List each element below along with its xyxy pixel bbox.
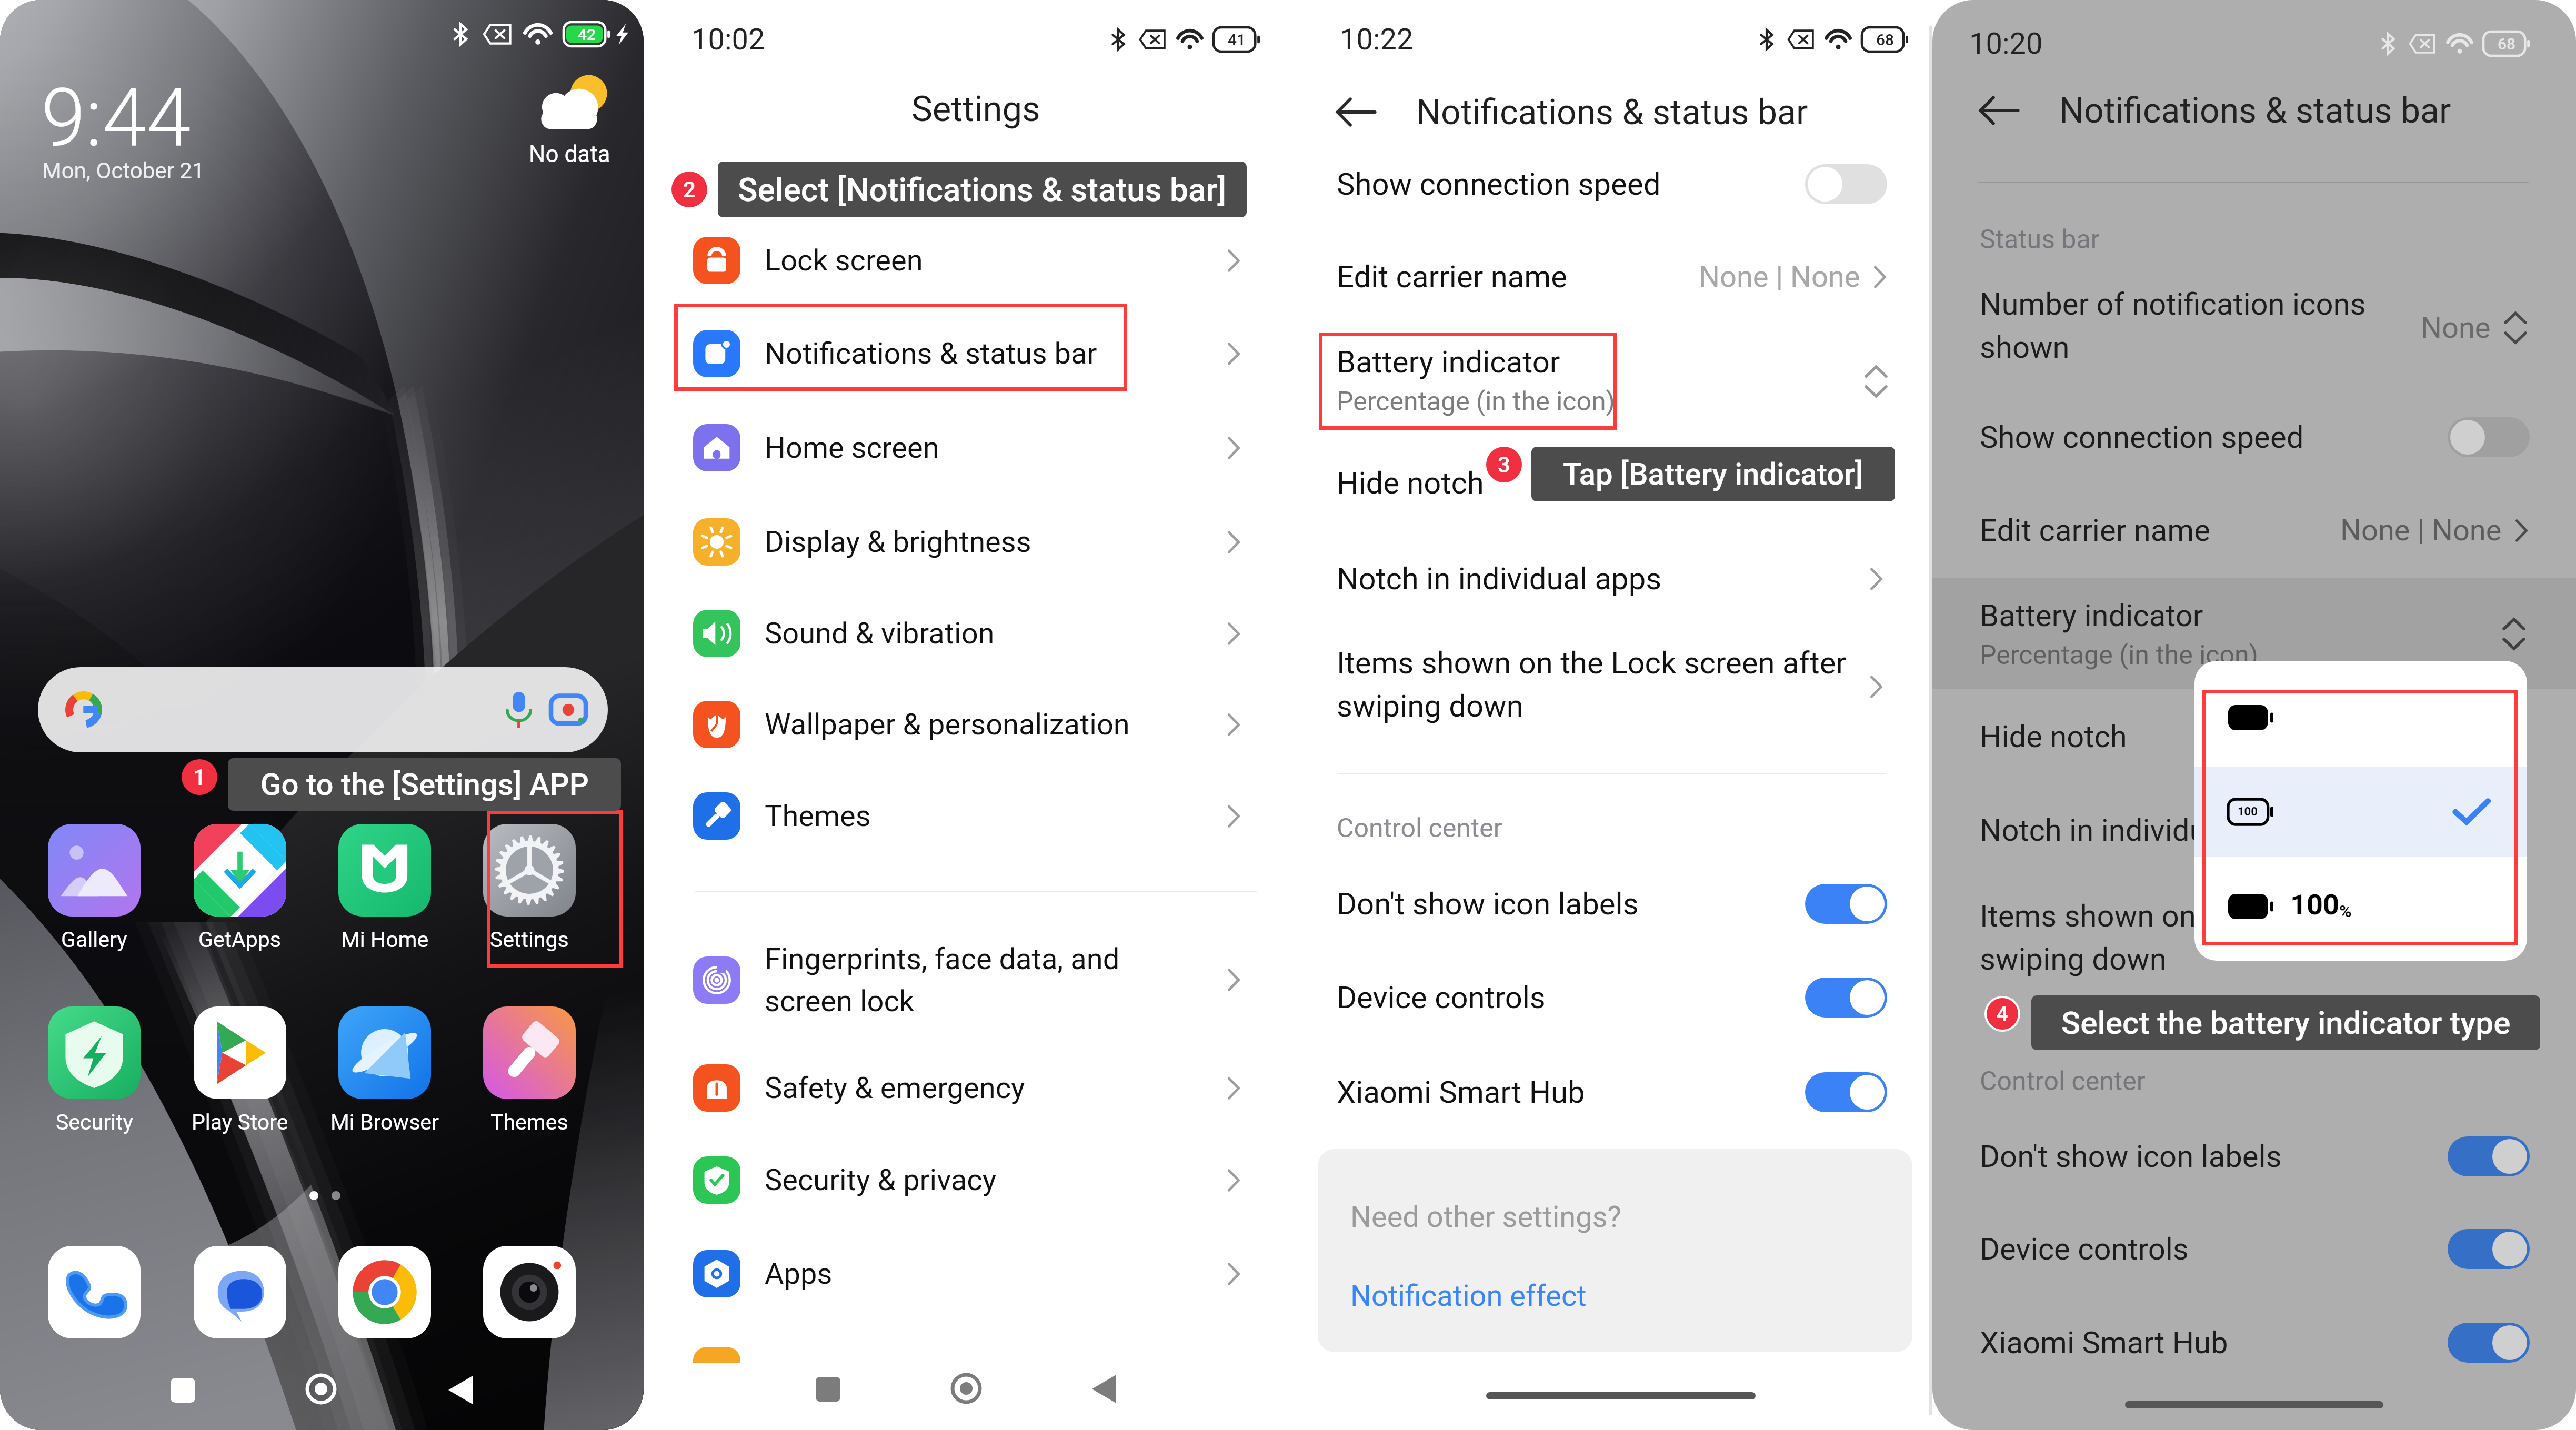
button[interactable]: Device controls (1310, 951, 1932, 1044)
staticText: Home screen (765, 430, 939, 465)
button[interactable]: Mi Browser (312, 1006, 457, 1159)
staticText: Notifications & status bar (765, 336, 1097, 371)
staticText: Xiaomi Smart Hub (1980, 1325, 2228, 1361)
button[interactable]: Wallpaper & personalization (662, 680, 1289, 769)
button[interactable]: Apps (662, 1230, 1289, 1318)
staticText: Mon, October 21 (42, 158, 205, 184)
staticText: 10:02 (691, 22, 765, 57)
staticText: None | None (1699, 259, 1860, 294)
staticText: 9:44 (41, 71, 191, 165)
button[interactable]: Security & privacy (662, 1136, 1289, 1224)
staticText: Device controls (1337, 980, 1546, 1015)
staticText: GetApps (198, 927, 282, 952)
staticText: Notch in individual apps (1980, 812, 2305, 848)
button[interactable]: Chrome (338, 1246, 431, 1338)
button[interactable]: Items shown on the Lock screen after (1310, 637, 1932, 737)
staticText: Percentage (in the icon) (1980, 640, 2259, 671)
button[interactable]: Edit carrier name (1310, 232, 1932, 321)
button[interactable]: Lock screen (662, 216, 1289, 305)
staticText: 100 (2238, 805, 2258, 819)
button[interactable]: Notification effect (1350, 1278, 1587, 1313)
button[interactable]: Items shown on (1932, 890, 2576, 990)
button[interactable]: Battery indicator (1310, 335, 1932, 429)
staticText: % (2339, 901, 2352, 921)
button[interactable]: GetApps (167, 824, 313, 976)
button[interactable]: Device controls (1932, 1203, 2576, 1295)
button[interactable]: Number of notification icons (1932, 278, 2576, 378)
button[interactable]: Edit carrier name (1932, 486, 2576, 575)
button[interactable]: Themes (662, 772, 1289, 860)
staticText: Notch in individual apps (1337, 561, 1662, 597)
staticText: Show connection speed (1337, 166, 1661, 202)
button[interactable]: Camera (483, 1246, 576, 1338)
staticText: Notification effect (1350, 1278, 1587, 1313)
staticText: Select the battery indicator type (2061, 1004, 2511, 1041)
button[interactable]: Xiaomi Smart Hub (1310, 1046, 1932, 1139)
staticText: 68 (1876, 31, 1895, 49)
staticText: Settings (911, 88, 1040, 130)
staticText: Hide notch (1980, 719, 2127, 754)
button[interactable]: Home screen (662, 404, 1289, 492)
staticText: Tap [Battery indicator] (1563, 456, 1863, 492)
staticText: 41 (1228, 31, 1246, 49)
button[interactable]: Show connection speed (1310, 138, 1932, 230)
staticText: 42 (578, 25, 596, 44)
staticText: Security & privacy (765, 1163, 997, 1197)
button[interactable]: Notifications & status bar (662, 309, 1289, 398)
staticText: Notifications & status bar (1416, 92, 1808, 133)
button[interactable]: Sound & vibration (662, 589, 1289, 678)
button[interactable]: Back (1973, 85, 2024, 136)
staticText: 1 (193, 764, 206, 790)
button[interactable]: Play Store (167, 1006, 313, 1159)
button[interactable]: Back (439, 1369, 482, 1411)
button[interactable]: Xiaomi Smart Hub (1932, 1296, 2576, 1389)
button[interactable]: Security (22, 1006, 167, 1159)
staticText: Fingerprints, face data, and (765, 942, 1120, 976)
button[interactable]: Back (1083, 1368, 1125, 1410)
staticText: swiping down (1337, 688, 1523, 724)
staticText: Need other settings? (1350, 1200, 1622, 1234)
button[interactable]: Settings (457, 824, 602, 976)
staticText: Edit carrier name (1980, 512, 2210, 548)
button[interactable]: Mi Home (312, 824, 457, 976)
button[interactable]: Display & brightness (662, 498, 1289, 586)
staticText: swiping down (1980, 941, 2167, 977)
button[interactable]: Notch in individual apps (1310, 534, 1932, 623)
button[interactable]: Fingerprints, face data, and (662, 930, 1289, 1030)
button[interactable]: Hide notch (1932, 692, 2576, 781)
button[interactable]: Recents (162, 1369, 204, 1411)
button[interactable]: Phone (48, 1246, 141, 1338)
staticText: Safety & emergency (765, 1071, 1025, 1105)
staticText: Sound & vibration (765, 616, 995, 651)
button[interactable]: Home (945, 1367, 987, 1409)
button[interactable]: Back (1330, 87, 1381, 137)
staticText: Wallpaper & personalization (765, 707, 1130, 742)
button[interactable]: Messages (194, 1246, 286, 1338)
button[interactable]: Don't show icon labels (1932, 1110, 2576, 1203)
staticText: Device controls (1980, 1231, 2189, 1267)
staticText: 2 (683, 177, 696, 203)
staticText: 3 (1498, 452, 1510, 478)
button[interactable]: Safety & emergency (662, 1044, 1289, 1132)
staticText: Don't show icon labels (1337, 886, 1639, 922)
staticText: Status bar (1980, 224, 2100, 255)
staticText: Don't show icon labels (1980, 1139, 2282, 1174)
staticText: screen lock (765, 984, 915, 1019)
button[interactable]: Themes (457, 1006, 602, 1159)
staticText: Select [Notifications & status bar] (738, 170, 1227, 209)
button[interactable]: Google search (38, 667, 608, 752)
button[interactable]: Hide notch (1310, 438, 1932, 528)
staticText: 10:20 (1969, 26, 2043, 61)
staticText: Xiaomi Smart Hub (1337, 1074, 1585, 1110)
staticText: No data (529, 140, 610, 168)
staticText: Themes (765, 799, 871, 833)
button[interactable]: Gallery (22, 824, 167, 976)
staticText: Hide notch (1337, 465, 1484, 501)
button[interactable]: Home (300, 1368, 342, 1410)
staticText: Edit carrier name (1337, 259, 1567, 295)
button[interactable]: Don't show icon labels (1310, 858, 1932, 950)
button[interactable]: Recents (807, 1368, 849, 1410)
button[interactable]: Notch in individual apps (1932, 786, 2576, 875)
staticText: 10:22 (1340, 22, 1414, 57)
button[interactable]: Show connection speed (1932, 391, 2576, 484)
